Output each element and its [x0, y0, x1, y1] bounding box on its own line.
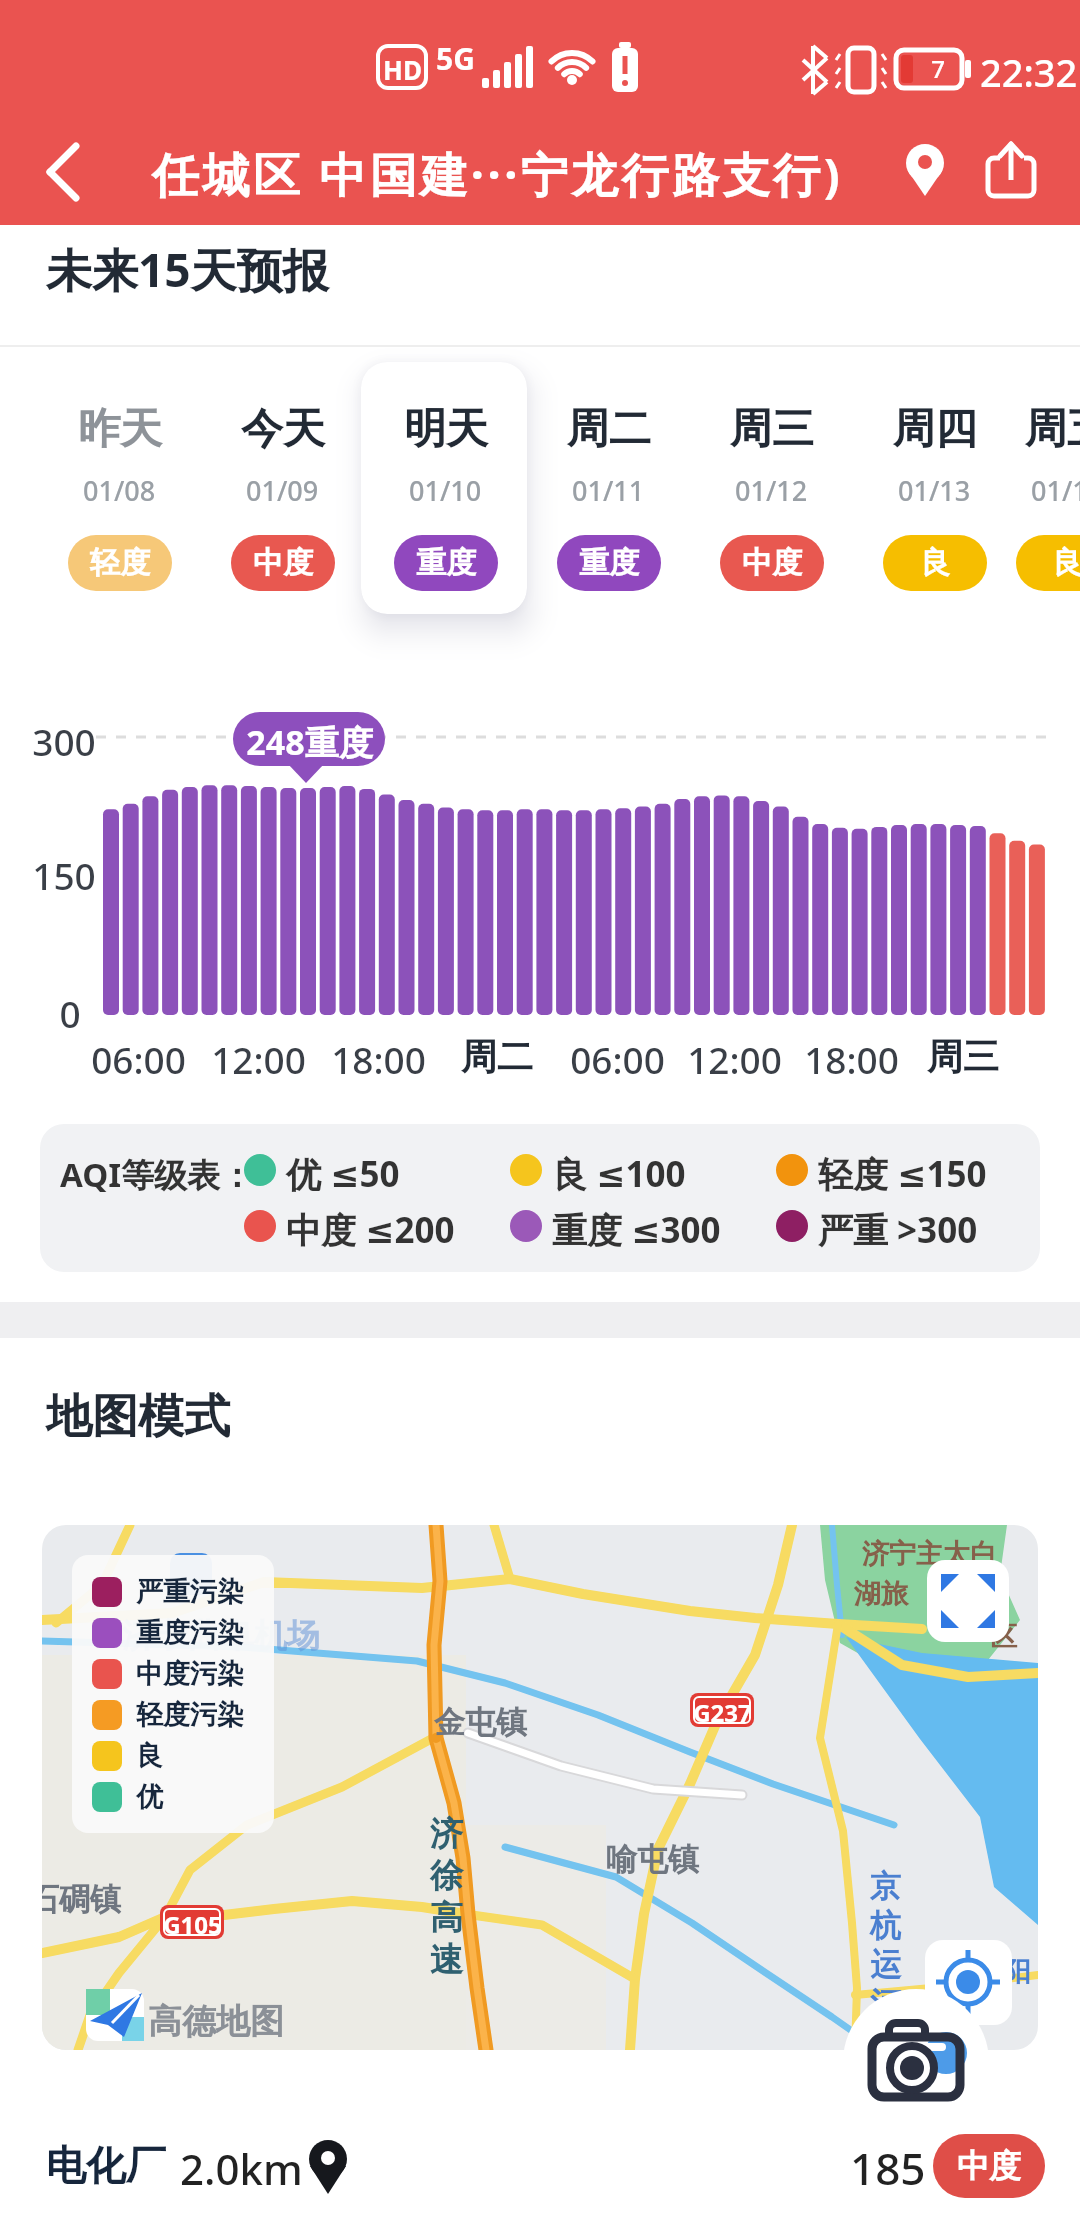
staticText: 01/10 [409, 472, 482, 509]
staticText: 京 [870, 1867, 901, 1906]
staticText: 杭 [870, 1906, 901, 1945]
staticText: 2.0km [180, 2140, 303, 2197]
staticText: 昨天 [78, 403, 162, 456]
staticText: 轻度 ≤150 [818, 1150, 987, 1198]
button[interactable]: 周四 [853, 363, 1016, 609]
staticText: 01/14 [1031, 472, 1080, 509]
staticText: 18:00 [804, 1034, 899, 1084]
staticText: 周三 [927, 1034, 999, 1079]
staticText: 石碉镇 [42, 1880, 121, 1919]
staticText: 01/11 [572, 472, 645, 509]
staticText: 湖旅 [854, 1577, 908, 1611]
staticText: 高德地图 [148, 2000, 284, 2043]
staticText: 中度 ≤200 [286, 1206, 455, 1254]
staticText: 良 ≤100 [552, 1150, 686, 1198]
staticText: 重度污染 [136, 1616, 244, 1650]
button[interactable]: 周五 [1016, 363, 1080, 609]
staticText: 电化厂 [46, 2140, 166, 2190]
staticText: 今天 [241, 403, 325, 456]
staticText: 运 [870, 1945, 901, 1984]
button[interactable]: 周二 [527, 363, 690, 609]
staticText: 01/09 [246, 472, 319, 509]
staticText: 济宁曲阜机场 [122, 1615, 320, 1657]
button[interactable]: 昨天 [38, 363, 201, 609]
staticText: 185 [850, 2138, 926, 2198]
staticText: 12:00 [211, 1034, 306, 1084]
staticText: 0 [59, 988, 81, 1038]
staticText: 周五 [1025, 403, 1080, 456]
staticText: 中度 [253, 544, 313, 582]
staticText: 方阳 [977, 1955, 1031, 1989]
staticText: 明天 [404, 403, 488, 456]
staticText: 地图模式 [46, 1388, 230, 1446]
staticText: 良 [136, 1739, 163, 1773]
staticText: 良 [1052, 544, 1080, 582]
staticText: 重度 ≤300 [552, 1206, 721, 1254]
staticText: 速 [430, 1939, 463, 1981]
staticText: 12:00 [687, 1034, 782, 1084]
button[interactable] [925, 1940, 1012, 2025]
staticText: 河 [870, 1984, 901, 2023]
button[interactable]: 中度 [933, 2134, 1045, 2198]
staticText: G105 [163, 1908, 222, 1941]
staticText: 5G [436, 38, 475, 79]
staticText: 周四 [893, 403, 977, 456]
staticText: 150 [32, 850, 96, 900]
staticText: 优 [136, 1780, 163, 1814]
staticText: 01/13 [898, 472, 971, 509]
staticText: 优 ≤50 [286, 1150, 400, 1198]
staticText: 任城区 中国建···宁龙行路支行) [152, 142, 844, 206]
staticText: 中度 [742, 544, 802, 582]
staticText: 248重度 [246, 719, 373, 765]
staticText: 喻屯镇 [606, 1840, 699, 1879]
staticText: 300 [32, 716, 96, 766]
button[interactable] [20, 130, 100, 210]
staticText: 轻度污染 [136, 1698, 244, 1732]
staticText: 周二 [461, 1034, 533, 1079]
staticText: 区 [990, 1620, 1017, 1654]
staticText: 7 [931, 52, 945, 85]
staticText: 济 [430, 1813, 463, 1855]
button[interactable]: 周三 [690, 363, 853, 609]
staticText: 重度 [416, 544, 476, 582]
staticText: 01/08 [83, 472, 156, 509]
button[interactable] [927, 1560, 1009, 1642]
staticText: 18:00 [331, 1034, 426, 1084]
staticText: 严重污染 [136, 1575, 244, 1609]
button[interactable] [843, 1989, 989, 2135]
staticText: G237 [693, 1696, 752, 1729]
staticText: 22:32 [980, 46, 1078, 98]
staticText: 01/12 [735, 472, 808, 509]
staticText: 06:00 [91, 1034, 186, 1084]
staticText: 济宁主太白 [862, 1537, 997, 1571]
staticText: 徐 [430, 1855, 463, 1897]
staticText: 金屯镇 [434, 1703, 527, 1742]
button[interactable]: 今天 [201, 363, 364, 609]
button[interactable]: 明天 [364, 363, 527, 609]
staticText: 重度 [579, 544, 639, 582]
staticText: 良 [920, 544, 950, 582]
staticText: 高 [430, 1897, 463, 1939]
staticText: AQI等级表： [60, 1152, 254, 1197]
staticText: 中度污染 [136, 1657, 244, 1691]
staticText: 周三 [730, 403, 814, 456]
staticText: 严重 >300 [818, 1206, 978, 1254]
staticText: 周二 [567, 403, 651, 456]
staticText: 轻度 [90, 544, 150, 582]
staticText: HD [383, 52, 422, 87]
staticText: 未来15天预报 [46, 238, 329, 301]
staticText: 中度 [957, 2146, 1021, 2186]
staticText: 06:00 [570, 1034, 665, 1084]
